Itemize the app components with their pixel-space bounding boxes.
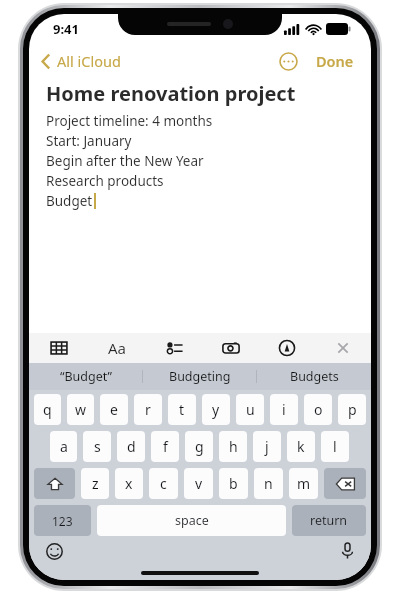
staticText: g bbox=[195, 437, 204, 456]
button[interactable]: space bbox=[97, 505, 286, 536]
staticText: Start: January bbox=[46, 132, 132, 150]
staticText: Budgets bbox=[290, 368, 339, 385]
staticText: All iCloud bbox=[57, 51, 121, 71]
staticText: 123 bbox=[52, 513, 73, 529]
button[interactable]: p bbox=[338, 394, 366, 425]
button[interactable]: Checklist bbox=[163, 336, 187, 360]
button[interactable]: j bbox=[253, 431, 281, 462]
staticText: Budgeting bbox=[169, 368, 231, 385]
button[interactable]: More options bbox=[274, 47, 303, 76]
staticText: v bbox=[195, 474, 203, 493]
button[interactable]: Aa bbox=[104, 334, 131, 362]
staticText: e bbox=[110, 400, 118, 419]
button[interactable]: i bbox=[270, 394, 298, 425]
staticText: Begin after the New Year bbox=[46, 152, 204, 170]
button[interactable]: l bbox=[321, 431, 349, 462]
staticText: r bbox=[145, 400, 151, 419]
button[interactable]: Budgeting bbox=[143, 363, 257, 390]
button[interactable]: Insert table bbox=[47, 336, 71, 360]
button[interactable]: Close bbox=[331, 336, 355, 360]
staticText: “Budget” bbox=[60, 368, 113, 385]
button[interactable]: w bbox=[67, 394, 94, 425]
staticText: b bbox=[229, 474, 238, 493]
staticText: c bbox=[160, 474, 167, 493]
button[interactable]: r bbox=[134, 394, 162, 425]
button[interactable]: Done bbox=[309, 46, 361, 76]
staticText: i bbox=[282, 400, 286, 419]
button[interactable]: “Budget” bbox=[29, 363, 143, 390]
staticText: k bbox=[297, 437, 305, 456]
button[interactable]: h bbox=[219, 431, 247, 462]
button[interactable]: f bbox=[151, 431, 179, 462]
button[interactable]: c bbox=[149, 468, 178, 499]
button[interactable]: return bbox=[292, 505, 366, 536]
button[interactable]: o bbox=[304, 394, 332, 425]
staticText: Done bbox=[316, 51, 354, 71]
button[interactable]: q bbox=[34, 394, 61, 425]
staticText: q bbox=[43, 400, 52, 419]
button[interactable]: g bbox=[185, 431, 213, 462]
button[interactable]: a bbox=[50, 431, 77, 462]
staticText: h bbox=[229, 437, 238, 456]
button[interactable]: z bbox=[81, 468, 109, 499]
staticText: u bbox=[246, 400, 255, 419]
button[interactable]: Shift bbox=[34, 468, 75, 499]
button[interactable]: u bbox=[236, 394, 264, 425]
staticText: Research products bbox=[46, 172, 164, 190]
button[interactable]: Emoji bbox=[43, 540, 66, 563]
staticText: z bbox=[92, 474, 99, 493]
staticText: s bbox=[94, 437, 101, 456]
button[interactable]: n bbox=[254, 468, 283, 499]
staticText: space bbox=[175, 512, 209, 529]
button[interactable]: Delete bbox=[324, 468, 366, 499]
staticText: t bbox=[179, 400, 185, 419]
button[interactable]: Camera bbox=[219, 336, 243, 360]
button[interactable]: All iCloud bbox=[29, 47, 129, 75]
staticText: d bbox=[127, 437, 136, 456]
button[interactable]: t bbox=[168, 394, 196, 425]
staticText: j bbox=[265, 437, 269, 456]
button[interactable]: v bbox=[184, 468, 213, 499]
button[interactable]: Dictate bbox=[338, 539, 357, 563]
staticText: m bbox=[297, 474, 311, 493]
staticText: p bbox=[348, 400, 357, 419]
staticText: 9:41 bbox=[53, 20, 79, 38]
button[interactable]: d bbox=[117, 431, 145, 462]
button[interactable]: Markup bbox=[275, 336, 299, 360]
staticText: l bbox=[333, 437, 337, 456]
button[interactable]: m bbox=[289, 468, 318, 499]
button[interactable]: x bbox=[115, 468, 143, 499]
staticText: o bbox=[314, 400, 323, 419]
staticText: w bbox=[75, 400, 87, 419]
staticText: Aa bbox=[108, 338, 127, 358]
staticText: f bbox=[163, 437, 168, 456]
button[interactable]: s bbox=[83, 431, 111, 462]
staticText: n bbox=[264, 474, 273, 493]
staticText: Budget bbox=[46, 192, 93, 210]
button[interactable]: Budgets bbox=[257, 363, 371, 390]
button[interactable]: b bbox=[219, 468, 248, 499]
button[interactable]: 123 bbox=[34, 505, 91, 536]
button[interactable]: y bbox=[202, 394, 230, 425]
staticText: a bbox=[60, 437, 68, 456]
staticText: Home renovation project bbox=[46, 80, 296, 107]
button[interactable]: e bbox=[100, 394, 128, 425]
staticText: x bbox=[125, 474, 133, 493]
button[interactable]: k bbox=[287, 431, 315, 462]
staticText: y bbox=[212, 400, 220, 419]
staticText: return bbox=[310, 512, 348, 529]
staticText: Project timeline: 4 months bbox=[46, 112, 213, 130]
